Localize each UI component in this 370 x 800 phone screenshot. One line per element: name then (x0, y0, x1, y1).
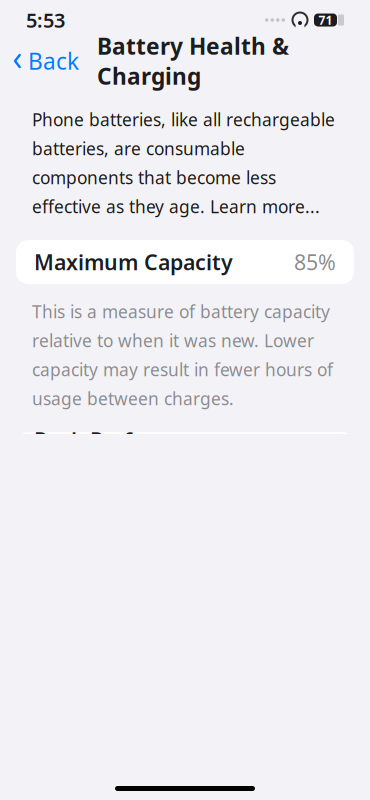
button[interactable]: Back (0, 38, 79, 84)
staticText: To reduce battery ageing, iPhone learns … (32, 715, 328, 800)
button[interactable]: Peak Performance Capability (16, 432, 354, 476)
staticText: Peak Performance Capability (34, 426, 223, 482)
staticText: 71 (318, 12, 332, 28)
staticText: Maximum Capacity (34, 248, 233, 276)
staticText: Back (28, 46, 79, 76)
staticText: Battery Health & Charging (97, 31, 289, 91)
staticText: 5:53 (26, 7, 65, 33)
staticText: This is a measure of battery capacity re… (32, 300, 333, 410)
button[interactable]: Maximum Capacity (16, 240, 354, 284)
staticText: Phone batteries, like all rechargeable b… (32, 108, 335, 218)
staticText: 85% (294, 248, 336, 276)
